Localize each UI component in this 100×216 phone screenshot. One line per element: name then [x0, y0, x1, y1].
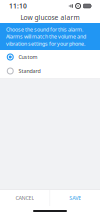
staticText: SAVE	[69, 194, 81, 202]
staticText: 11:10	[9, 2, 27, 10]
button[interactable]: Standard	[0, 64, 100, 78]
staticText: Choose the sound for this alarm. Alarms …	[6, 26, 86, 47]
button[interactable]: CANCEL	[0, 190, 50, 206]
staticText: Standard	[18, 67, 40, 75]
staticText: Custom	[18, 53, 37, 61]
staticText: Low glucose alarm	[20, 13, 79, 22]
button[interactable]: Custom	[0, 50, 100, 64]
button[interactable]: SAVE	[50, 190, 100, 206]
staticText: CANCEL	[15, 194, 34, 202]
